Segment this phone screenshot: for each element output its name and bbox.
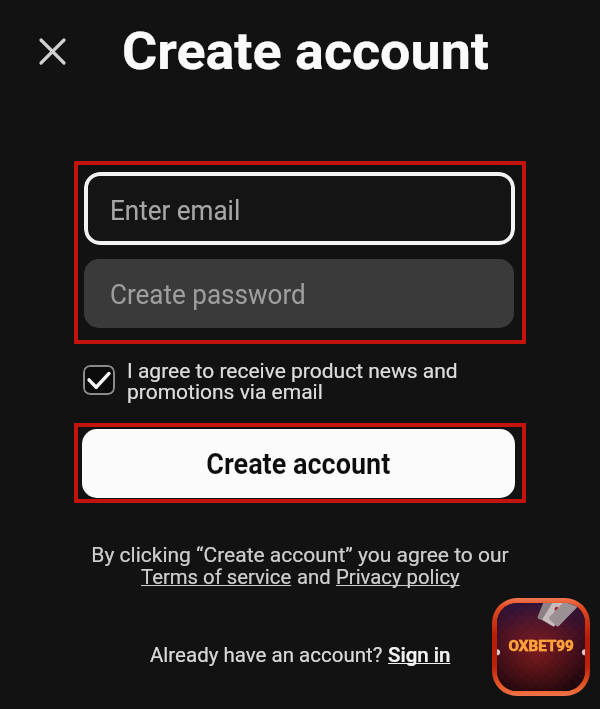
staticText: I agree to receive product news and	[127, 359, 458, 384]
button[interactable]: Terms of service	[141, 565, 292, 589]
staticText: Create account	[122, 21, 489, 82]
button[interactable]: Sign in	[388, 643, 451, 667]
button[interactable]: Privacy policy	[336, 565, 460, 589]
button[interactable]: OXBET99	[492, 598, 590, 696]
button[interactable]: Create password	[84, 259, 514, 328]
staticText: By clicking “Create account” you agree t…	[91, 543, 509, 568]
staticText: and	[292, 565, 336, 589]
staticText: Create account	[206, 446, 391, 481]
staticText: Create password	[110, 278, 306, 311]
staticText: OXBET99	[508, 638, 575, 655]
staticText: promotions via email	[127, 380, 323, 405]
staticText: Enter email	[110, 194, 241, 227]
button[interactable]: Enter email	[84, 172, 515, 245]
staticText: Already have an account?	[150, 643, 388, 667]
button[interactable]: I agree to receive product news and	[83, 359, 463, 409]
button[interactable]: Close	[36, 35, 69, 68]
button[interactable]: Create account	[82, 429, 515, 498]
